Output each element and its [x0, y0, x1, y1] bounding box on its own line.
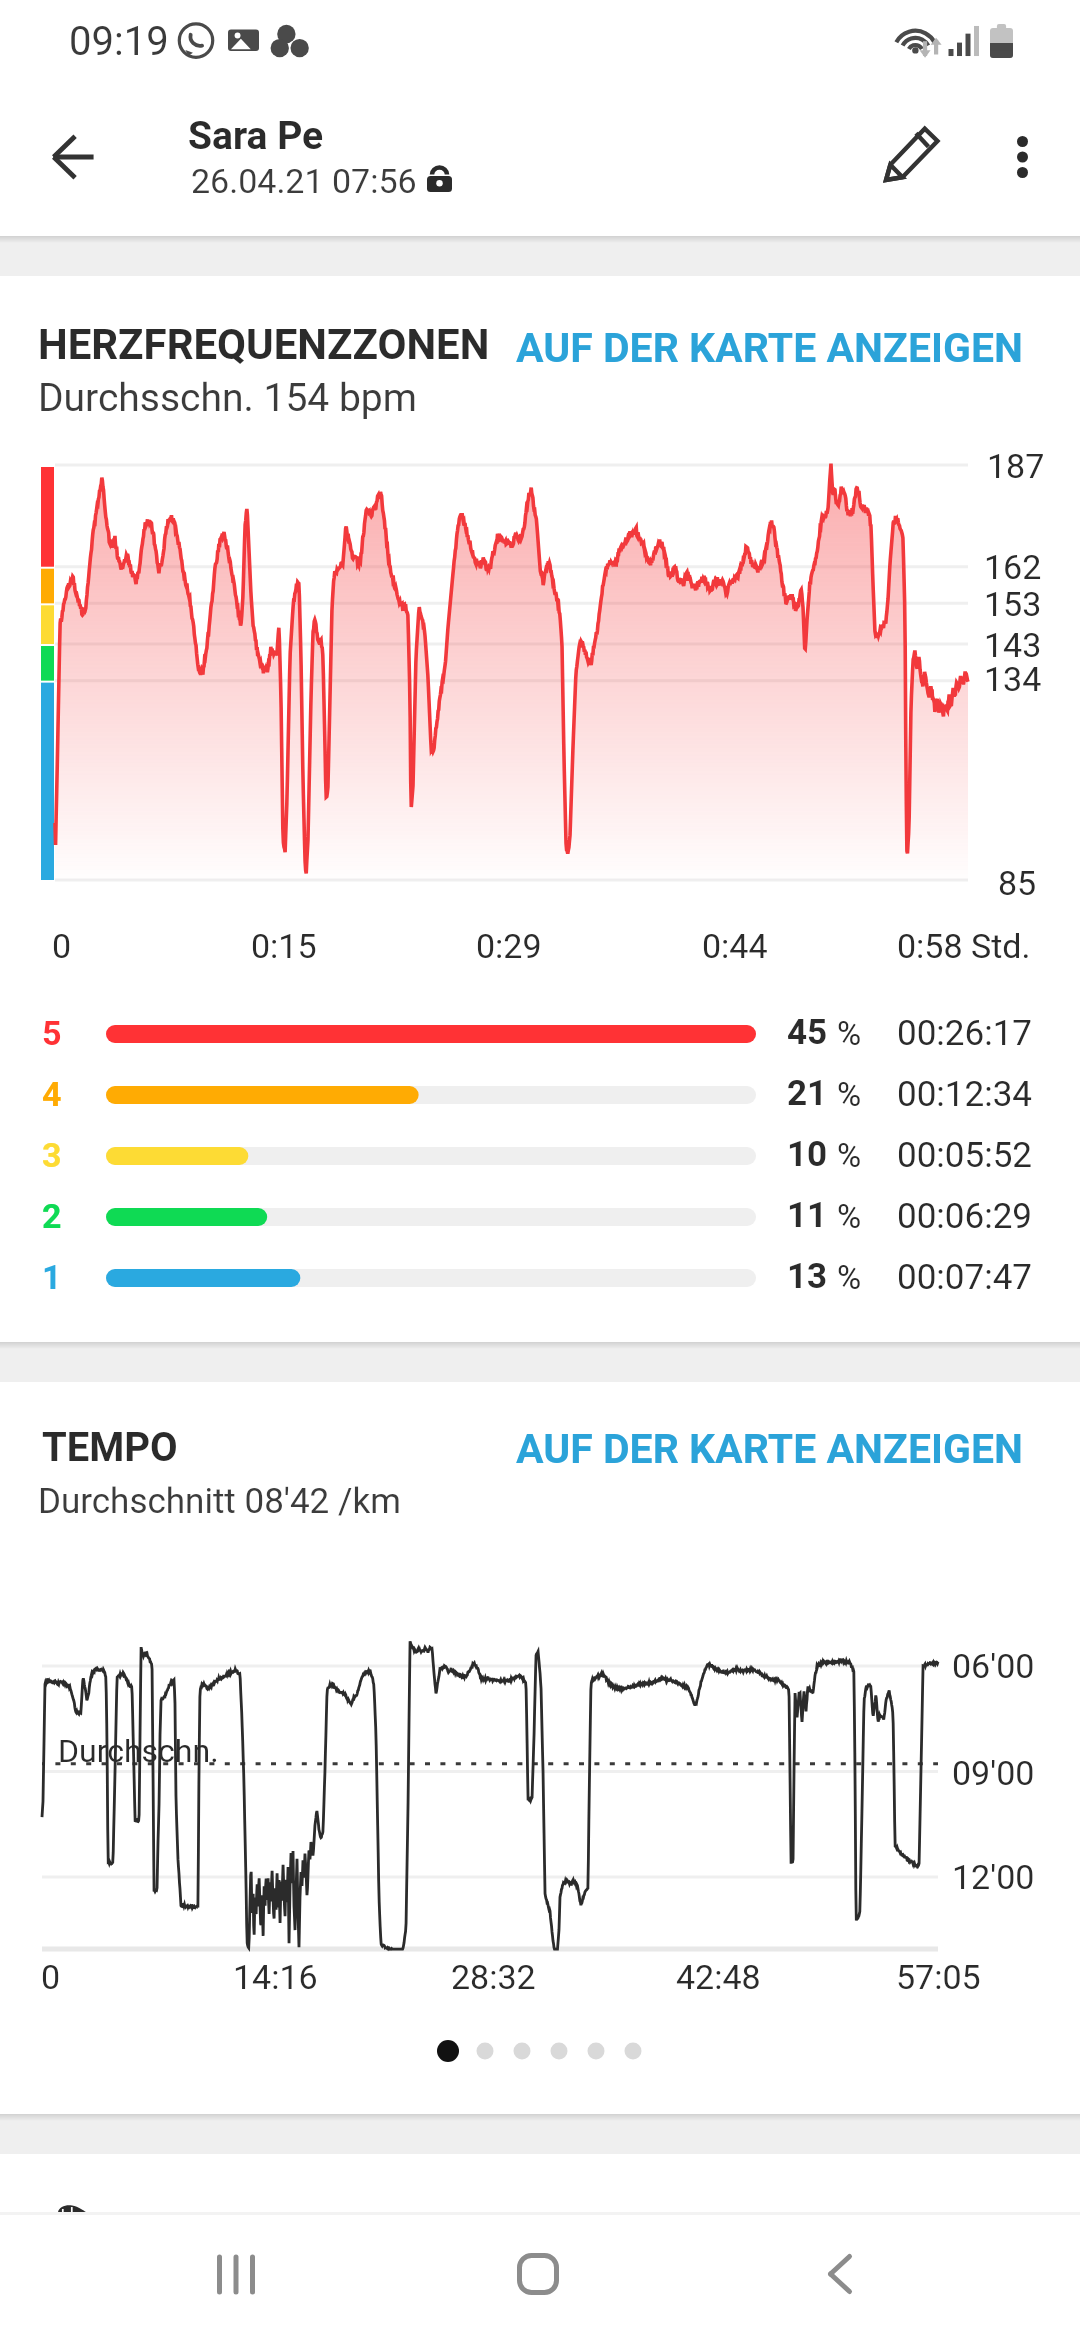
staticText: 134: [984, 659, 1042, 699]
staticText: AUF DER KARTE ANZEIGEN: [516, 324, 1023, 372]
staticText: 2: [42, 1196, 62, 1236]
button[interactable]: More options: [969, 104, 1075, 210]
staticText: 3: [42, 1135, 62, 1175]
button[interactable]: AUF DER KARTE ANZEIGEN: [516, 1425, 1023, 1473]
staticText: 28:32: [451, 1957, 536, 1997]
staticText: 00:07:47: [897, 1257, 1032, 1298]
staticText: 00:12:34: [897, 1074, 1032, 1115]
staticText: 57:05: [896, 1957, 981, 1997]
staticText: 4: [42, 1074, 62, 1114]
staticText: 0:15: [251, 926, 317, 966]
staticText: %: [837, 1136, 862, 1175]
button[interactable]: Recent apps: [176, 2214, 296, 2334]
staticText: 26.04.21 07:56: [191, 161, 417, 201]
button[interactable]: 1: [0, 1247, 1080, 1308]
staticText: 85: [998, 863, 1037, 903]
button[interactable]: 5: [0, 1003, 1080, 1064]
staticText: 0: [52, 926, 72, 966]
staticText: 00:06:29: [897, 1196, 1032, 1237]
button[interactable]: AUF DER KARTE ANZEIGEN: [516, 324, 1023, 372]
staticText: 1: [42, 1257, 62, 1297]
staticText: 12'00: [952, 1857, 1035, 1897]
staticText: 09:19: [69, 18, 169, 65]
button[interactable]: 4: [0, 1064, 1080, 1125]
staticText: TEMPO: [42, 1424, 178, 1471]
staticText: 162: [984, 547, 1042, 587]
button[interactable]: 2: [0, 1186, 1080, 1247]
staticText: Sara Pe: [188, 113, 324, 159]
staticText: 0: [41, 1957, 61, 1997]
staticText: 143: [984, 625, 1042, 665]
staticText: 10: [787, 1134, 828, 1175]
staticText: 42:48: [676, 1957, 761, 1997]
staticText: 00:05:52: [897, 1135, 1032, 1176]
staticText: 06'00: [952, 1646, 1035, 1686]
staticText: 0:44: [702, 926, 768, 966]
staticText: Durchschn.: [58, 1732, 219, 1770]
button[interactable]: Back: [780, 2214, 900, 2334]
staticText: 5: [42, 1013, 62, 1053]
staticText: 09'00: [952, 1753, 1035, 1793]
staticText: Durchschnitt 08'42 /km: [38, 1481, 401, 1522]
button[interactable]: Back: [18, 102, 128, 212]
staticText: 21: [787, 1073, 828, 1114]
button[interactable]: Home: [478, 2214, 598, 2334]
staticText: AUF DER KARTE ANZEIGEN: [516, 1425, 1023, 1473]
button[interactable]: Edit: [858, 101, 964, 207]
staticText: HERZFREQUENZZONEN: [38, 320, 490, 369]
staticText: %: [837, 1075, 862, 1114]
staticText: 13: [787, 1256, 828, 1297]
staticText: 153: [984, 584, 1042, 624]
staticText: %: [837, 1197, 862, 1236]
staticText: 0:58 Std.: [897, 926, 1031, 966]
staticText: Durchsschn. 154 bpm: [38, 375, 417, 421]
staticText: 187: [987, 446, 1045, 486]
button[interactable]: 3: [0, 1125, 1080, 1186]
staticText: 45: [787, 1012, 828, 1053]
staticText: 11: [787, 1195, 828, 1236]
staticText: 14:16: [233, 1957, 318, 1997]
staticText: 0:29: [476, 926, 542, 966]
staticText: 00:26:17: [897, 1013, 1032, 1054]
staticText: %: [837, 1258, 862, 1297]
staticText: %: [837, 1014, 862, 1053]
